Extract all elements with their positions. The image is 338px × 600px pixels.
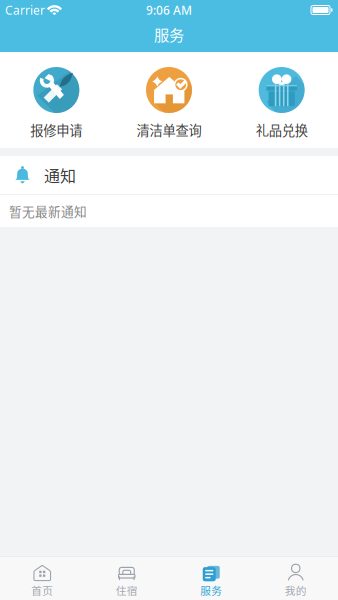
staticText: 9:06 AM (146, 2, 192, 18)
button[interactable]: 首页 (0, 556, 84, 600)
staticText: 清洁单查询 (136, 120, 201, 139)
button[interactable]: 我的 (253, 556, 338, 600)
staticText: 报修申请 (30, 120, 82, 139)
staticText: 首页 (31, 582, 53, 598)
staticText: 服务 (154, 23, 184, 45)
button[interactable]: 清洁单查询 (113, 52, 225, 148)
button[interactable]: 报修申请 (0, 52, 113, 148)
staticText: 我的 (285, 582, 307, 598)
staticText: 服务 (200, 582, 222, 598)
staticText: 通知 (44, 163, 76, 187)
button[interactable]: 服务 (169, 556, 253, 600)
staticText: 住宿 (116, 582, 138, 598)
staticText: Carrier (5, 2, 45, 18)
button[interactable]: 住宿 (84, 556, 169, 600)
staticText: 礼品兑换 (256, 120, 308, 139)
button[interactable]: 通知 (0, 156, 338, 194)
button[interactable]: 礼品兑换 (225, 52, 338, 148)
staticText: 暂无最新通知 (9, 202, 87, 220)
